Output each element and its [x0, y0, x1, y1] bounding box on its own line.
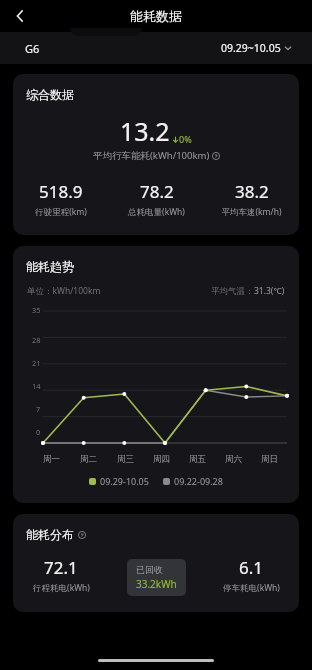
staticText: 综合数据	[26, 87, 74, 102]
staticText: 78.2	[140, 180, 174, 203]
staticText: 35	[32, 305, 41, 315]
staticText: 09.29~10.05	[221, 41, 281, 55]
staticText: 31.3(℃)	[254, 285, 285, 297]
staticText: 行程耗电(kWh)	[33, 582, 90, 594]
staticText: 周四	[153, 454, 170, 465]
staticText: 6.1	[239, 556, 264, 579]
staticText: 停车耗电(kWh)	[223, 582, 280, 594]
staticText: 总耗电量(kWh)	[128, 206, 185, 218]
staticText: 38.2	[235, 180, 269, 203]
staticText: 单位：kWh/100km	[27, 285, 101, 297]
staticText: 0	[36, 427, 41, 437]
staticText: 09.29-10.05	[100, 475, 149, 487]
staticText: 周五	[189, 454, 206, 465]
staticText: 周日	[261, 454, 278, 465]
button[interactable]: Back	[6, 2, 34, 30]
staticText: 能耗趋势	[26, 259, 74, 274]
staticText: 行驶里程(km)	[35, 206, 87, 218]
staticText: 28	[32, 335, 41, 345]
staticText: 能耗分布	[26, 527, 74, 542]
staticText: 平均行车能耗(kWh/100km)	[93, 149, 210, 162]
staticText: 平均气温：	[211, 286, 254, 297]
staticText: 0%	[179, 133, 192, 145]
staticText: 09.22-09.28	[174, 475, 223, 487]
button[interactable]: 09.29~10.05	[221, 41, 292, 55]
staticText: 能耗数据	[130, 8, 182, 24]
staticText: 已回收	[136, 564, 163, 575]
staticText: 13.2	[120, 114, 170, 148]
staticText: 周三	[117, 454, 134, 465]
staticText: 518.9	[39, 180, 83, 203]
staticText: 周一	[43, 454, 60, 465]
staticText: 14	[32, 381, 41, 391]
staticText: 21	[32, 358, 41, 368]
staticText: 平均车速(km/h)	[221, 206, 282, 218]
staticText: 72.1	[44, 556, 78, 579]
staticText: 周六	[225, 454, 242, 465]
staticText: G6	[25, 41, 40, 56]
staticText: 33.2kWh	[136, 577, 177, 591]
staticText: 周二	[80, 454, 97, 465]
staticText: 7	[36, 404, 41, 414]
